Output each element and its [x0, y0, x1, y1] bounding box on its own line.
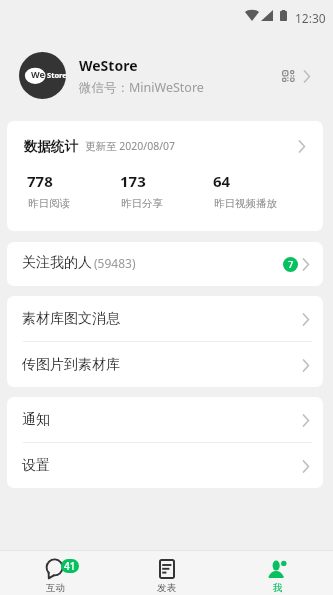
button[interactable]: 设置 [7, 443, 323, 488]
button[interactable]: QR code [273, 64, 297, 88]
button[interactable]: 关注我的人 [7, 242, 323, 286]
staticText: 昨日阅读 [28, 197, 70, 210]
staticText: 173 [120, 171, 146, 191]
staticText: 64 [213, 171, 231, 191]
staticText: 数据统计 [24, 138, 78, 155]
staticText: 互动 [46, 582, 65, 594]
staticText: 12:30 [295, 10, 326, 26]
staticText: 关注我的人 [22, 254, 92, 272]
button[interactable]: 数据统计 [7, 121, 323, 171]
staticText: 41 [64, 559, 76, 573]
staticText: 素材库图文消息 [22, 310, 120, 328]
staticText: We [31, 68, 45, 80]
button[interactable]: 互动 [0, 551, 111, 595]
staticText: 通知 [22, 411, 50, 429]
staticText: 昨日分享 [121, 197, 163, 210]
button[interactable]: 我 [222, 551, 333, 595]
staticText: 传图片到素材库 [22, 356, 120, 374]
staticText: 设置 [22, 457, 50, 475]
staticText: 更新至 2020/08/07 [85, 139, 176, 153]
staticText: 778 [27, 171, 53, 191]
staticText: 我 [273, 582, 283, 594]
staticText: 昨日视频播放 [214, 197, 277, 210]
staticText: 微信号：MiniWeStore [79, 79, 204, 96]
staticText: Store [47, 70, 66, 80]
button[interactable]: 素材库图文消息 [7, 296, 323, 341]
button[interactable]: We [0, 30, 333, 121]
button[interactable]: 通知 [7, 397, 323, 442]
staticText: WeStore [79, 56, 138, 75]
staticText: 7 [288, 258, 294, 271]
button[interactable]: 传图片到素材库 [7, 342, 323, 387]
staticText: (59483) [94, 255, 136, 271]
button[interactable]: 发表 [111, 551, 222, 595]
staticText: 发表 [157, 582, 176, 594]
